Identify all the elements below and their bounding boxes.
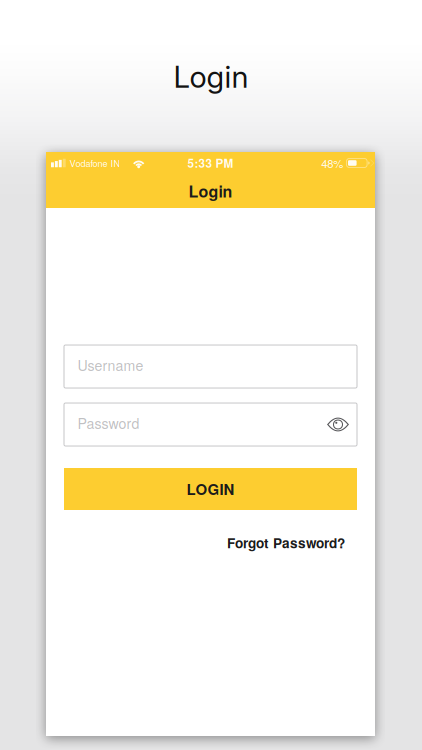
button[interactable]: Username xyxy=(64,345,357,388)
staticText: 48% xyxy=(321,155,343,171)
staticText: Password xyxy=(77,413,139,433)
button[interactable]: Forgot Password? xyxy=(227,529,357,556)
staticText: Forgot Password? xyxy=(227,533,345,552)
staticText: Login xyxy=(173,59,248,95)
staticText: Username xyxy=(77,355,143,375)
staticText: LOGIN xyxy=(186,478,234,500)
button[interactable]: LOGIN xyxy=(64,468,357,510)
button[interactable]: Password xyxy=(64,403,357,446)
staticText: Login xyxy=(188,179,232,202)
staticText: 5:33 PM xyxy=(187,155,233,171)
staticText: Vodafone IN xyxy=(69,156,120,170)
